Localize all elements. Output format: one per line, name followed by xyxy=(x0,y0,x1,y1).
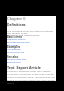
staticText: Short entry xyxy=(7,44,19,47)
staticText: Definition of term xyxy=(7,38,26,41)
staticText: Definitions xyxy=(7,22,26,27)
staticText: Examples xyxy=(7,45,21,49)
staticText: Related notes links xyxy=(7,58,27,61)
staticText: See also xyxy=(7,55,19,59)
staticText: Basic terms xyxy=(7,35,23,39)
staticText: External links xyxy=(7,61,21,64)
staticText: Extended terminology xyxy=(7,41,30,44)
staticText: First example xyxy=(7,48,21,51)
staticText: Content is available under the Creative … xyxy=(7,69,56,84)
staticText: Text Export Article xyxy=(7,65,41,70)
staticText: handbook and related works. xyxy=(7,33,40,36)
staticText: Chapter 6 xyxy=(7,16,26,21)
staticText: The following terms are used throughout … xyxy=(7,29,56,35)
staticText: Second one here xyxy=(7,51,25,54)
